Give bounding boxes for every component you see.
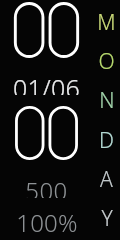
staticText: O [98, 47, 115, 76]
staticText: A [100, 165, 113, 194]
staticText: M [97, 8, 116, 37]
button[interactable]: Minutes [0, 106, 93, 160]
button[interactable]: Date January 6 [0, 71, 93, 95]
staticText: N [99, 86, 115, 115]
staticText: D [99, 126, 114, 155]
staticText: 01/06 [13, 71, 80, 95]
button[interactable]: Battery 100 percent [0, 206, 93, 232]
staticText: 500 [25, 174, 68, 198]
button[interactable]: Hours [0, 2, 93, 58]
button[interactable]: Day of week Monday [93, 0, 120, 240]
staticText: 100% [16, 206, 78, 232]
staticText: Y [101, 204, 113, 233]
button[interactable]: Step count 500 [0, 174, 93, 198]
